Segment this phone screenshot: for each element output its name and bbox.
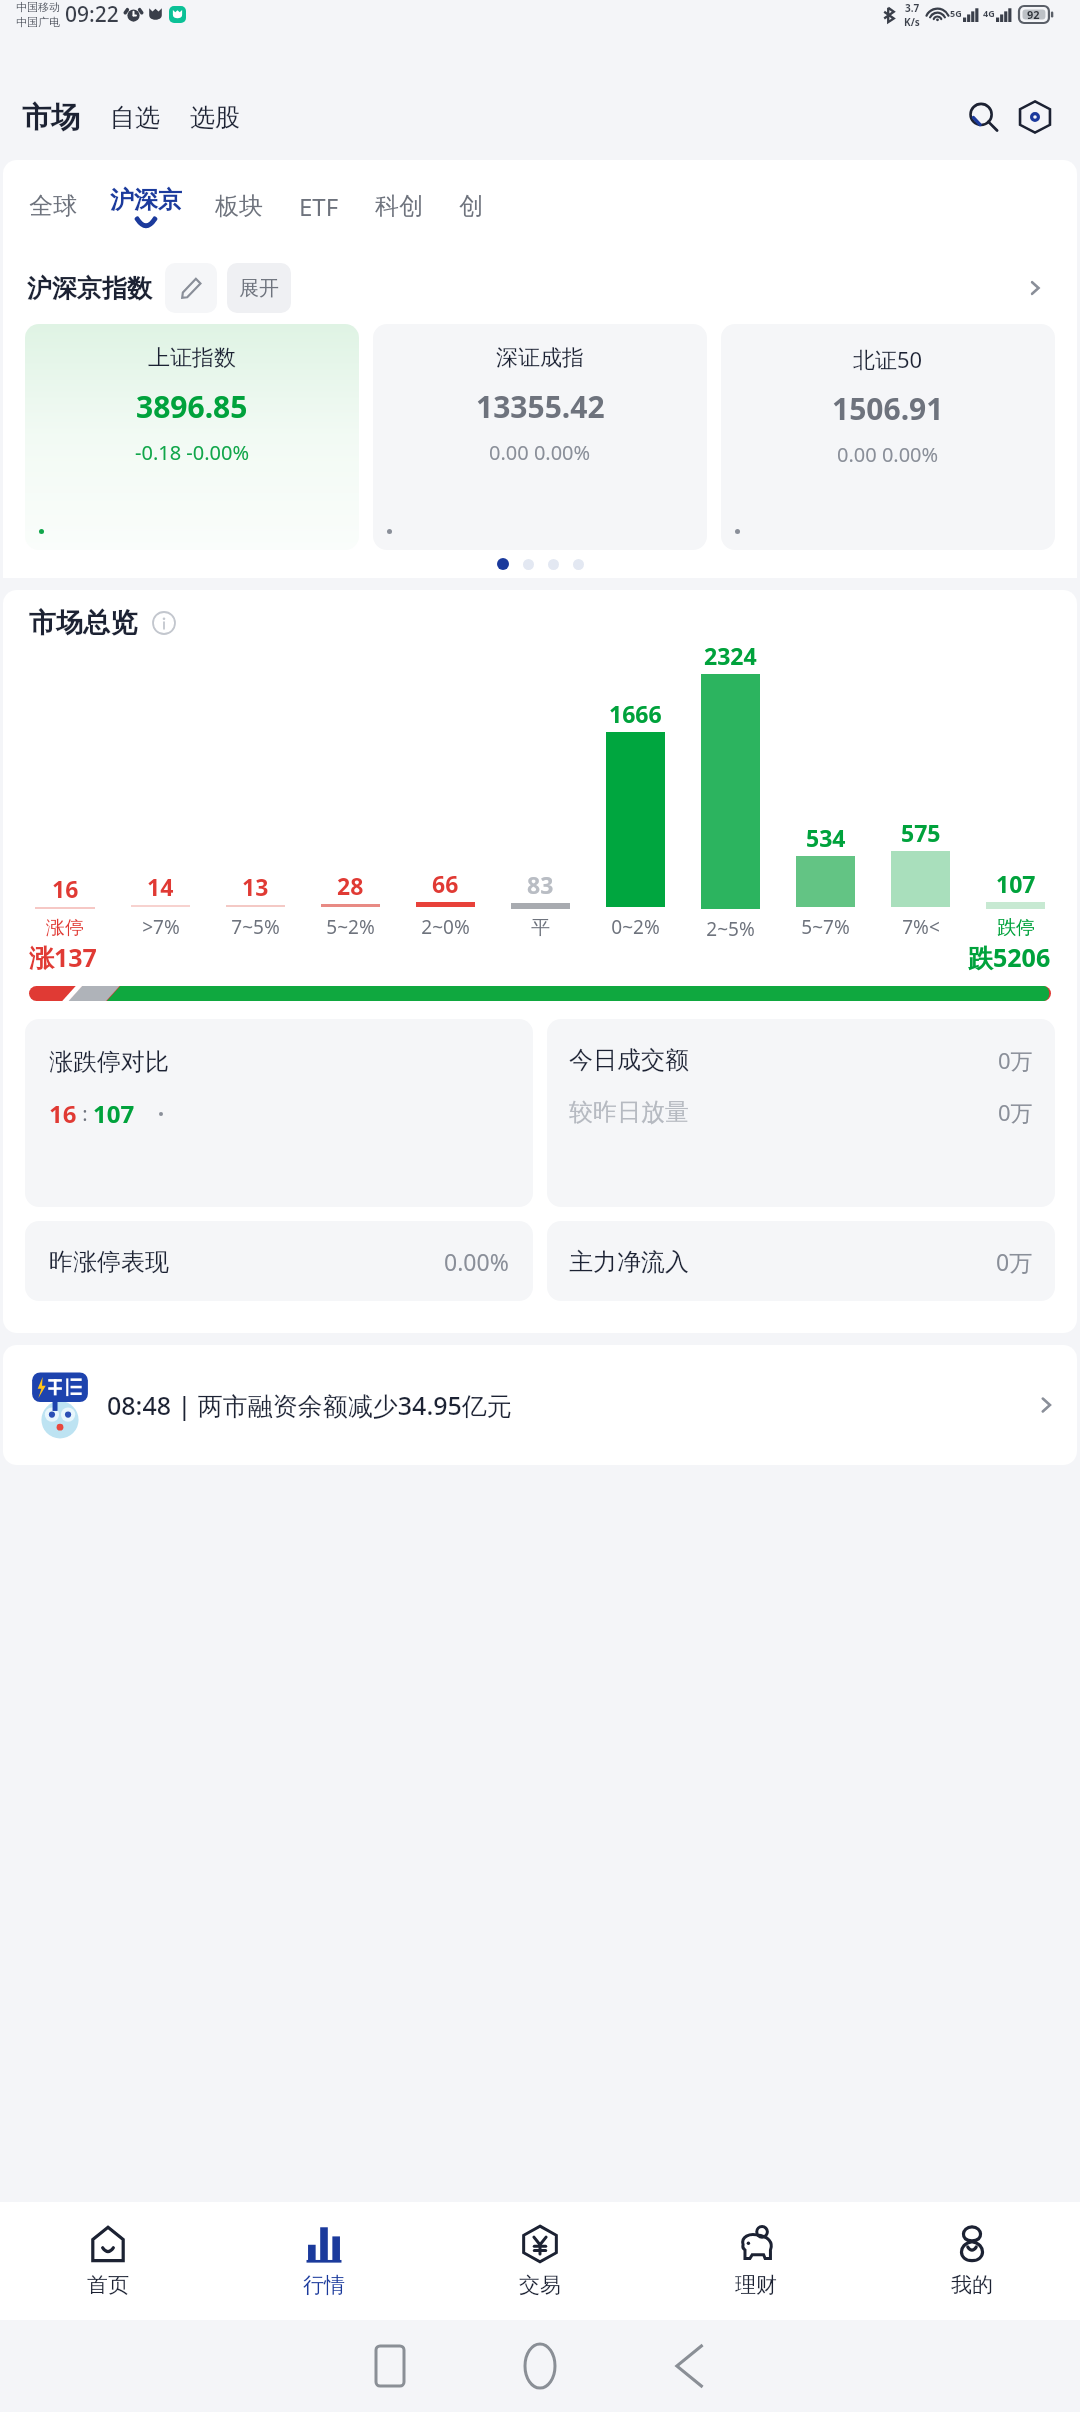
button[interactable]: 自选 [110, 102, 160, 133]
staticText: : [77, 1100, 93, 1127]
staticText: 交易 [519, 2272, 561, 2298]
button[interactable]: 创 [459, 191, 483, 221]
button[interactable]: 北证50 [721, 324, 1055, 550]
staticText: ETF [299, 190, 339, 223]
staticText: 575 [901, 817, 941, 848]
button[interactable]: 昨涨停表现 [25, 1221, 533, 1301]
staticText: 83 [527, 869, 554, 900]
staticText: 今日成交额 [569, 1045, 689, 1075]
staticText: 5G [950, 7, 962, 19]
staticText: 13355.42 [476, 386, 605, 427]
staticText: 创 [459, 191, 483, 221]
staticText: 深证成指 [496, 344, 584, 372]
staticText: 板块 [215, 191, 263, 221]
staticText: 展开 [239, 276, 279, 301]
staticText: 首页 [87, 2272, 129, 2298]
staticText: 沪深京 [110, 185, 182, 215]
staticText: 理财 [735, 2272, 777, 2298]
button[interactable]: Edit [165, 263, 217, 313]
staticText: 0.00 0.00% [489, 439, 591, 466]
staticText: 跌5206 [968, 940, 1051, 974]
staticText: 4G [983, 7, 995, 19]
button[interactable]: Home [495, 2321, 585, 2411]
button[interactable]: 科创 [375, 191, 423, 221]
staticText: 0.00 0.00% [837, 441, 939, 468]
staticText: 昨涨停表现 [49, 1247, 169, 1277]
staticText: 选股 [190, 102, 240, 133]
staticText: 涨137 [29, 940, 97, 974]
staticText: 北证50 [853, 344, 923, 374]
staticText: 534 [806, 822, 846, 853]
staticText: 28 [337, 870, 364, 901]
staticText: 3896.85 [136, 386, 248, 427]
button[interactable]: 涨跌停对比 [25, 1019, 533, 1207]
button[interactable]: 主力净流入 [547, 1221, 1055, 1301]
staticText: 2~5% [706, 916, 755, 940]
staticText: 1666 [609, 698, 662, 729]
button[interactable]: 08:48 | 两市融资余额减少34.95亿元 [3, 1345, 1077, 1465]
staticText: 较昨日放量 [569, 1097, 689, 1127]
staticText: 2324 [704, 640, 757, 671]
button[interactable]: 行情 [216, 2202, 432, 2320]
button[interactable]: Back [645, 2321, 735, 2411]
staticText: 0万 [998, 1045, 1033, 1075]
staticText: 5~2% [326, 914, 375, 940]
staticText: 全球 [29, 191, 77, 221]
staticText: >7% [142, 914, 180, 940]
button[interactable]: 展开 [227, 263, 291, 313]
button[interactable]: 全球 [29, 191, 77, 221]
staticText: 5~7% [801, 914, 850, 940]
staticText: 0万 [996, 1246, 1033, 1277]
button[interactable]: 板块 [215, 191, 263, 221]
button[interactable]: Scan [1012, 94, 1058, 140]
staticText: 跌停 [997, 916, 1035, 940]
staticText: 92 [1027, 7, 1040, 22]
staticText: 7%< [902, 914, 940, 940]
button[interactable]: Info [149, 608, 179, 638]
button[interactable]: 交易 [432, 2202, 648, 2320]
staticText: 3.7 [905, 1, 920, 15]
staticText: 16 [49, 1097, 77, 1130]
staticText: 科创 [375, 191, 423, 221]
staticText: 上证指数 [148, 344, 236, 372]
staticText: 107 [93, 1097, 135, 1130]
staticText: 09:22 [65, 0, 119, 29]
button[interactable]: Recents [345, 2321, 435, 2411]
button[interactable]: 首页 [0, 2202, 216, 2320]
staticText: 涨跌停对比 [49, 1047, 169, 1077]
staticText: 我的 [951, 2272, 993, 2298]
staticText: 市场 [22, 99, 80, 136]
button[interactable]: Search [960, 94, 1006, 140]
staticText: 0.00% [444, 1246, 509, 1277]
staticText: 市场总览 [29, 606, 137, 640]
button[interactable]: 深证成指 [373, 324, 707, 550]
staticText: K/s [904, 15, 920, 29]
staticText: 2~0% [421, 914, 470, 940]
button[interactable]: More [1015, 268, 1055, 308]
staticText: 0~2% [611, 914, 660, 940]
staticText: 中国广电 [16, 15, 60, 29]
staticText: 沪深京指数 [27, 273, 152, 304]
staticText: 7~5% [231, 914, 280, 940]
button[interactable]: 上证指数 [25, 324, 359, 550]
button[interactable]: 今日成交额 [547, 1019, 1055, 1207]
staticText: 涨停 [46, 916, 84, 940]
staticText: 主力净流入 [569, 1247, 689, 1277]
staticText: 08:48 | 两市融资余额减少34.95亿元 [107, 1388, 512, 1422]
staticText: 0万 [998, 1097, 1033, 1127]
button[interactable]: 选股 [190, 102, 240, 133]
staticText: 自选 [110, 102, 160, 133]
button[interactable]: ETF [299, 190, 339, 223]
button[interactable]: 理财 [648, 2202, 864, 2320]
button[interactable]: 我的 [864, 2202, 1080, 2320]
staticText: 13 [242, 871, 269, 902]
staticText: 66 [432, 868, 459, 899]
staticText: 107 [996, 868, 1036, 899]
staticText: -0.18 -0.00% [135, 439, 250, 466]
staticText: 中国移动 [16, 0, 60, 14]
staticText: 14 [147, 871, 174, 902]
button[interactable]: 沪深京 [110, 185, 182, 228]
staticText: 行情 [303, 2272, 345, 2298]
button[interactable]: 市场 [22, 99, 80, 136]
staticText: 16 [52, 873, 79, 904]
